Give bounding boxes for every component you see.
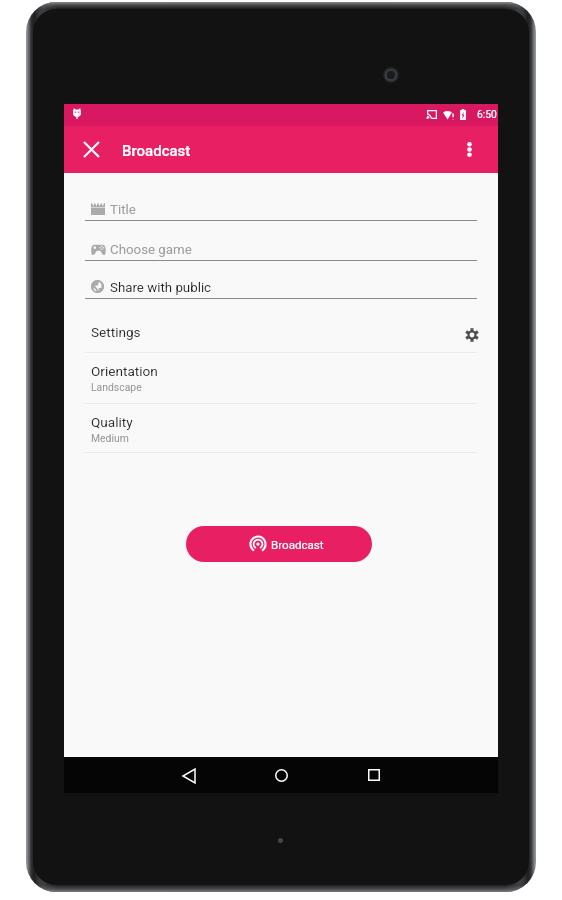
- button[interactable]: Choose game: [64, 222, 498, 260]
- staticText: Choose game: [110, 242, 192, 258]
- button[interactable]: More options: [449, 129, 489, 169]
- staticText: Medium: [91, 432, 129, 444]
- button[interactable]: Share with public: [64, 260, 498, 298]
- staticText: Share with public: [110, 280, 212, 296]
- button[interactable]: Orientation: [64, 353, 498, 402]
- staticText: Title: [110, 202, 136, 218]
- staticText: Broadcast: [122, 142, 191, 160]
- staticText: Settings: [91, 324, 141, 340]
- button[interactable]: Broadcast: [186, 526, 372, 562]
- button[interactable]: Close: [71, 129, 111, 169]
- staticText: Landscape: [91, 381, 142, 393]
- button[interactable]: Home: [261, 757, 301, 793]
- staticText: 6:50: [477, 108, 497, 120]
- button[interactable]: Quality: [64, 404, 498, 453]
- staticText: Quality: [91, 414, 133, 430]
- button[interactable]: Back: [169, 757, 209, 793]
- staticText: Orientation: [91, 363, 158, 379]
- button[interactable]: Settings: [64, 305, 498, 352]
- staticText: Broadcast: [271, 538, 324, 552]
- button[interactable]: Title: [64, 182, 498, 220]
- button[interactable]: Recents: [354, 757, 394, 793]
